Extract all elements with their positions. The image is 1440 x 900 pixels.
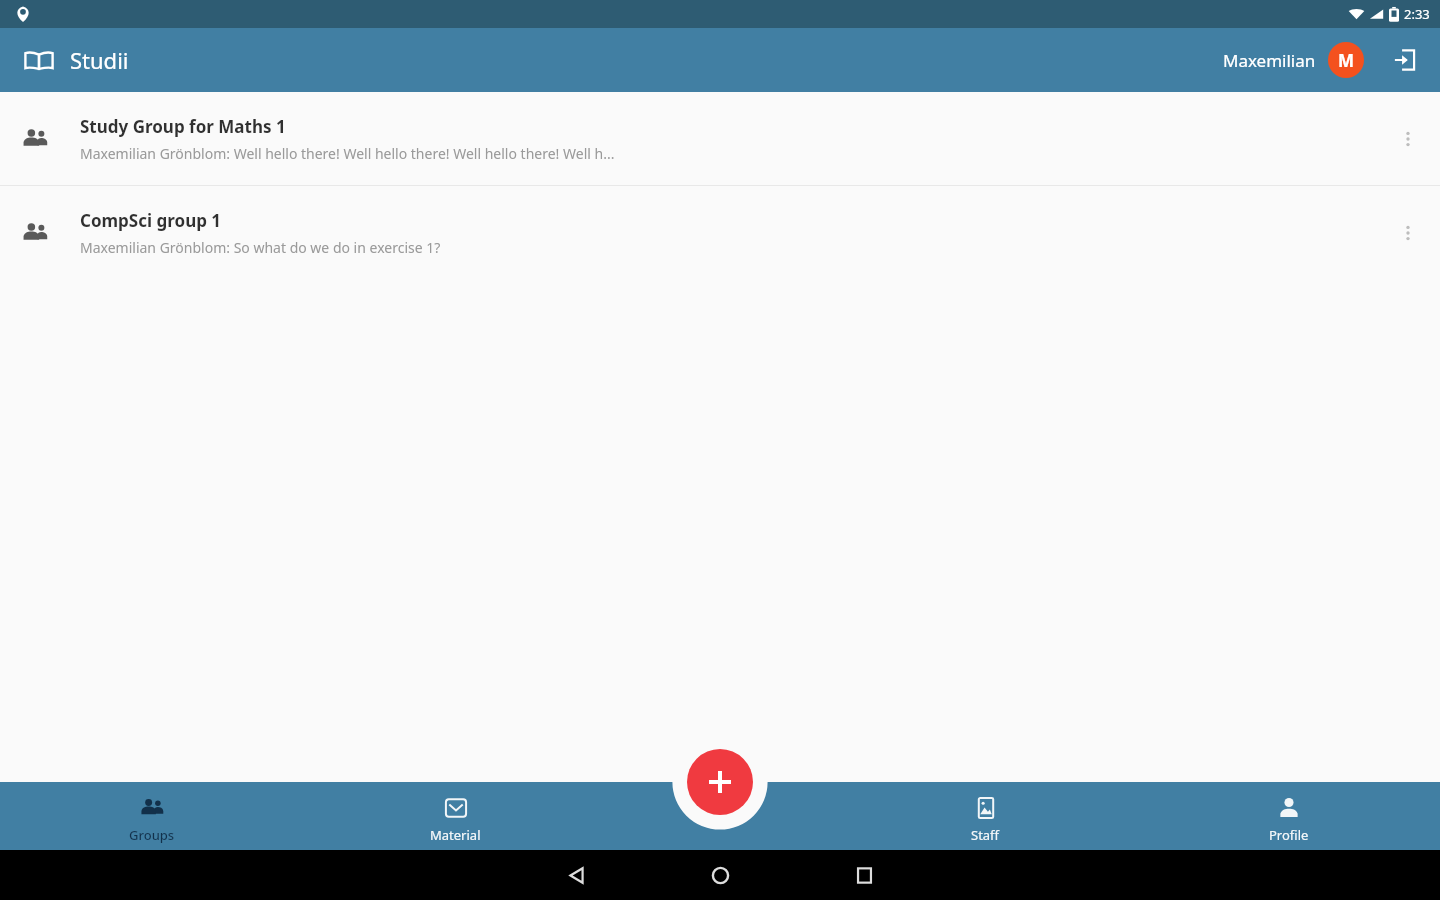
staticText: Staff	[971, 826, 1000, 844]
staticText: Profile	[1269, 826, 1309, 844]
staticText: Studii	[70, 45, 129, 75]
staticText: Maxemilian	[1223, 49, 1316, 72]
button[interactable]: More options	[1386, 117, 1430, 161]
button[interactable]: More options	[1386, 211, 1430, 255]
button[interactable]: Maxemilian	[1217, 38, 1370, 82]
button[interactable]: Back	[548, 850, 604, 900]
button[interactable]: Add	[687, 749, 753, 815]
staticText: CompSci group 1	[80, 209, 222, 232]
button[interactable]: Material	[304, 782, 607, 850]
button[interactable]: Log out	[1384, 40, 1424, 80]
staticText: Maxemilian Grönblom: Well hello there! W…	[80, 144, 615, 163]
button[interactable]: CompSci group 1	[0, 186, 1440, 279]
button[interactable]: Recent apps	[836, 850, 892, 900]
staticText: Groups	[129, 826, 175, 844]
staticText: Maxemilian Grönblom: So what do we do in…	[80, 238, 441, 257]
button[interactable]: Staff	[834, 782, 1137, 850]
button[interactable]: Home	[692, 850, 748, 900]
staticText: Material	[430, 826, 481, 844]
button[interactable]: Groups	[0, 782, 304, 850]
staticText: 2:33	[1404, 5, 1430, 23]
button[interactable]: Study Group for Maths 1	[0, 92, 1440, 185]
staticText: M	[1338, 49, 1355, 72]
button[interactable]: Profile	[1137, 782, 1440, 850]
staticText: Study Group for Maths 1	[80, 115, 286, 138]
